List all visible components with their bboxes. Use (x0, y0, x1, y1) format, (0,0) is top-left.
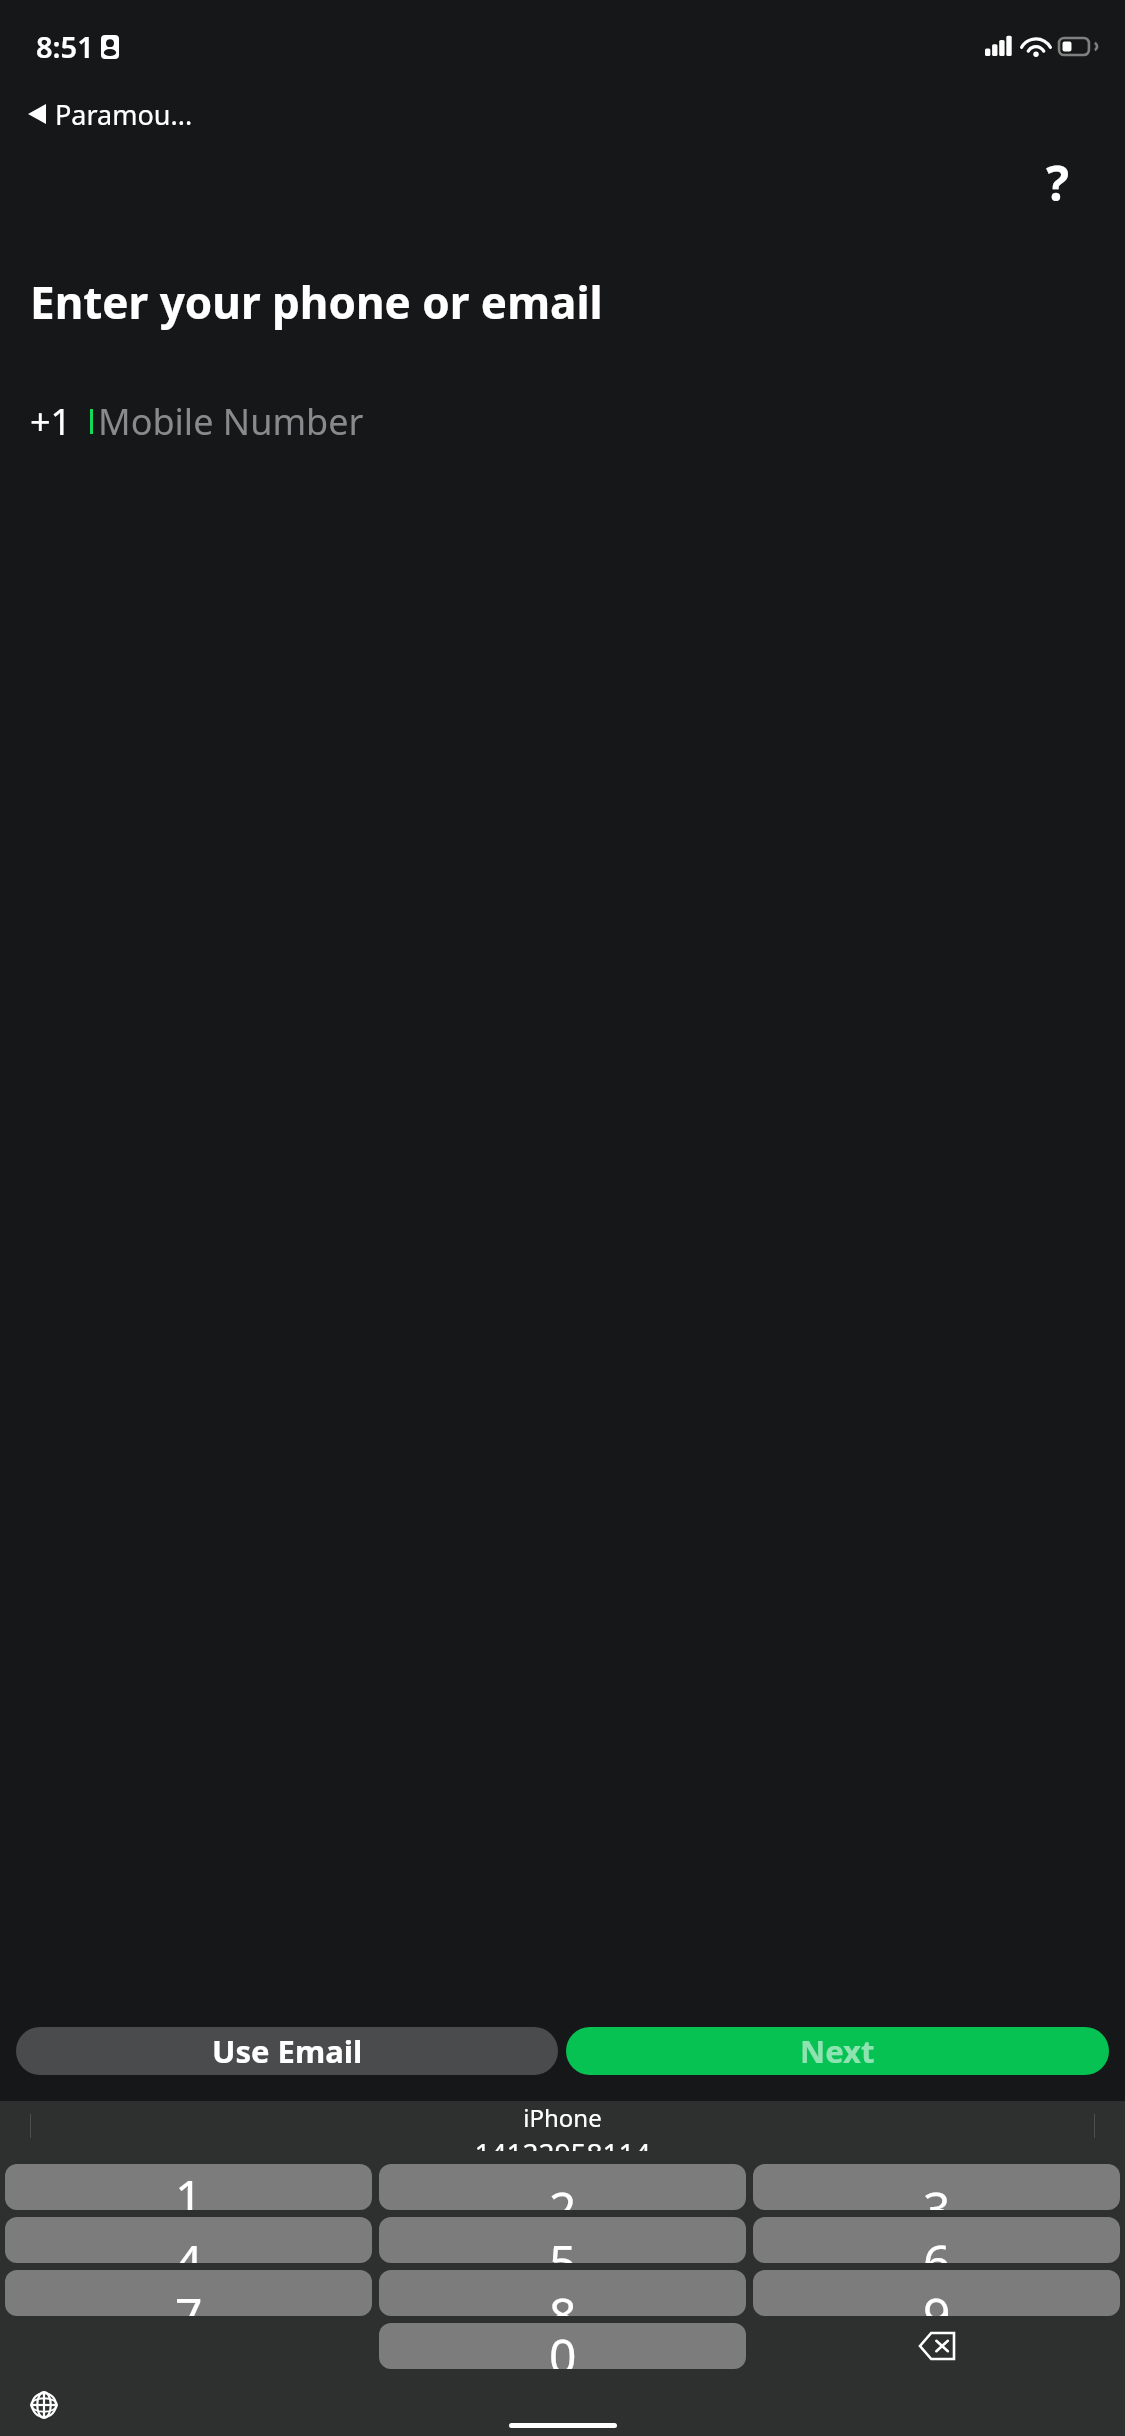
button[interactable]: 7 (5, 2270, 372, 2316)
button[interactable]: 1 (5, 2164, 372, 2210)
staticText: Use Email (212, 2030, 363, 2072)
button[interactable]: Change keyboard language (22, 2383, 66, 2427)
button[interactable]: Paramou... (28, 92, 193, 136)
button[interactable]: 9 (753, 2270, 1120, 2316)
button[interactable]: 2 (379, 2164, 746, 2210)
staticText: +1 (30, 397, 72, 446)
staticText: 9 (923, 2282, 951, 2316)
staticText: Enter your phone or email (30, 272, 603, 332)
staticText: 8:51 (36, 27, 94, 66)
staticText: 3 (923, 2176, 951, 2210)
button[interactable]: Delete (753, 2323, 1120, 2369)
staticText: 4 (175, 2229, 203, 2263)
staticText: Paramou... (55, 96, 193, 133)
button[interactable]: 4 (5, 2217, 372, 2263)
staticText: 8 (549, 2282, 577, 2316)
button[interactable]: Help (1027, 150, 1087, 210)
staticText: 7 (175, 2282, 203, 2316)
staticText: 0 (549, 2323, 577, 2369)
button[interactable]: Next (566, 2027, 1109, 2075)
staticText: iPhone (523, 2101, 602, 2134)
button[interactable]: iPhone (474, 2101, 651, 2151)
button[interactable]: 0 (379, 2323, 746, 2369)
button[interactable]: Use Email (16, 2027, 558, 2075)
staticText: 6 (923, 2229, 951, 2263)
staticText: 2 (549, 2176, 577, 2210)
staticText: Mobile Number (98, 397, 364, 446)
button[interactable]: 8 (379, 2270, 746, 2316)
staticText: 5 (549, 2229, 577, 2263)
staticText: 1 (175, 2164, 203, 2210)
button[interactable]: 6 (753, 2217, 1120, 2263)
button[interactable]: +1 (30, 380, 1125, 462)
staticText: 14122958114 (474, 2134, 651, 2151)
staticText: Next (800, 2030, 875, 2072)
button[interactable]: 3 (753, 2164, 1120, 2210)
staticText: ? (1046, 150, 1069, 210)
button[interactable]: 5 (379, 2217, 746, 2263)
